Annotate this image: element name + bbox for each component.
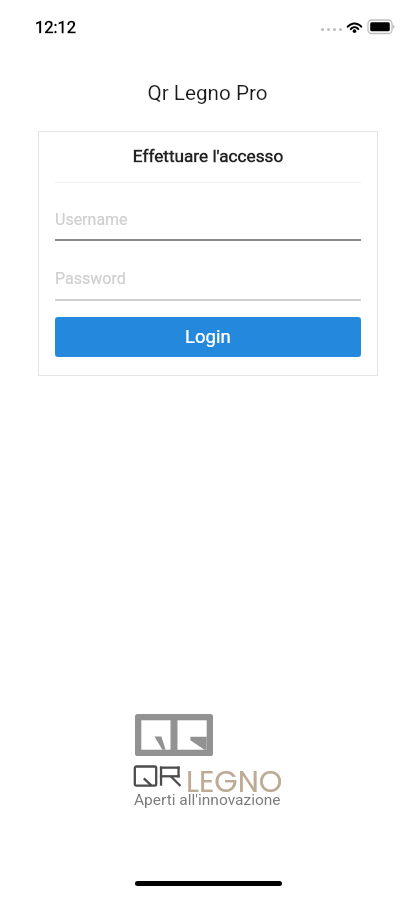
other: QR [134, 766, 184, 786]
staticText: 12:12 [35, 18, 77, 37]
other: Wi-Fi [346, 20, 363, 33]
staticText: LEGNO [186, 761, 283, 803]
other: Battery [368, 20, 396, 34]
staticText: Qr Legno Pro [0, 81, 415, 105]
button[interactable]: Login [55, 317, 361, 357]
staticText: Effettuare l'accesso [38, 146, 378, 166]
staticText: Login [185, 326, 231, 348]
button[interactable]: Username [55, 207, 361, 241]
staticText: Username [55, 210, 128, 229]
staticText: Password [55, 269, 126, 288]
staticText: Aperti all'innovazione [134, 791, 281, 809]
button[interactable]: Password [55, 266, 361, 301]
other: QR Legno logo [135, 714, 213, 756]
